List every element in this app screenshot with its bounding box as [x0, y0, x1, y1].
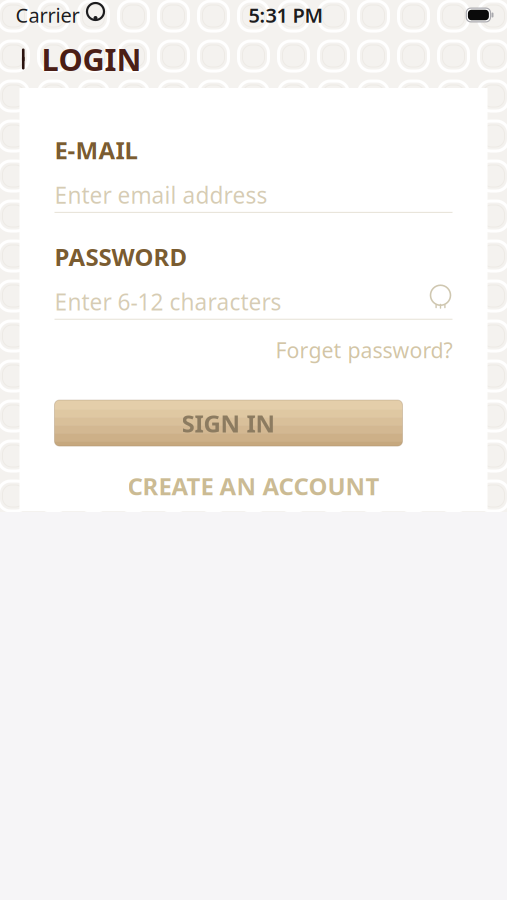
button[interactable]: SIGN IN [54, 400, 402, 446]
staticText: PASSWORD [54, 241, 187, 273]
button[interactable]: Enter email address [54, 166, 452, 213]
staticText: 5:31 PM [248, 2, 323, 28]
staticText: E-MAIL [54, 134, 137, 166]
staticText: SIGN IN [181, 407, 275, 439]
staticText: Enter email address [54, 180, 267, 210]
button[interactable]: CREATE AN ACCOUNT [115, 462, 391, 510]
button[interactable]: Enter 6-12 characters [54, 273, 452, 320]
button[interactable]: Forget password? [275, 330, 452, 370]
staticText: Enter 6-12 characters [54, 287, 281, 317]
staticText: Carrier [15, 2, 79, 28]
staticText: Forget password? [275, 336, 452, 364]
staticText: CREATE AN ACCOUNT [127, 470, 379, 502]
button[interactable]: LOGIN [0, 31, 151, 87]
staticText: LOGIN [41, 39, 141, 79]
